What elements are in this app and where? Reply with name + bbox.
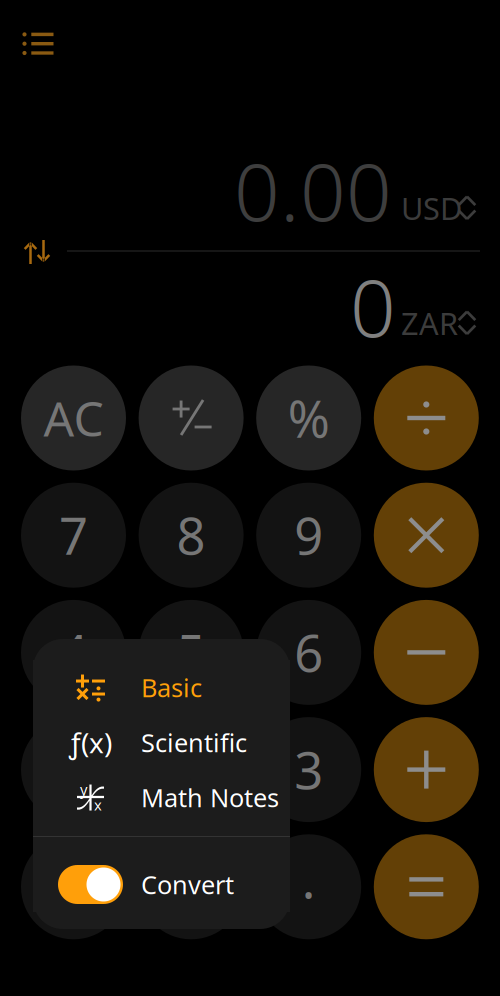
- button[interactable]: 8: [139, 483, 244, 588]
- button[interactable]: 2: [139, 717, 244, 822]
- button[interactable]: Add: [374, 717, 479, 822]
- staticText: USD: [401, 188, 462, 228]
- button[interactable]: y: [33, 770, 290, 825]
- button[interactable]: 5: [139, 600, 244, 705]
- staticText: Math Notes: [141, 781, 279, 814]
- button[interactable]: 0: [21, 834, 126, 939]
- button[interactable]: %: [256, 365, 361, 470]
- button[interactable]: 7: [21, 483, 126, 588]
- staticText: .: [302, 845, 316, 912]
- button[interactable]: .: [256, 834, 361, 939]
- button[interactable]: Subtract: [374, 600, 479, 705]
- button[interactable]: AC: [21, 365, 126, 470]
- button[interactable]: Convert: [33, 857, 290, 912]
- staticText: 0: [350, 253, 396, 359]
- button[interactable]: Toggle sign: [139, 365, 244, 470]
- staticText: Convert: [141, 868, 234, 901]
- button[interactable]: Swap currencies: [15, 230, 59, 274]
- staticText: x: [94, 795, 102, 814]
- button[interactable]: Source currency USD: [401, 190, 479, 226]
- staticText: ZAR: [401, 303, 458, 343]
- staticText: 5: [177, 619, 206, 686]
- staticText: 0.00: [234, 137, 392, 243]
- staticText: y: [80, 779, 87, 799]
- button[interactable]: Calculator modes: [12, 21, 64, 67]
- staticText: 6: [294, 619, 323, 686]
- staticText: 9: [294, 502, 323, 569]
- button[interactable]: 3: [256, 717, 361, 822]
- button[interactable]: 9: [256, 483, 361, 588]
- staticText: 7: [59, 502, 88, 569]
- button[interactable]: Basic: [33, 660, 290, 715]
- button[interactable]: ƒ(x): [33, 715, 290, 770]
- button[interactable]: Target currency ZAR: [401, 305, 479, 341]
- staticText: Basic: [141, 671, 202, 704]
- staticText: 8: [177, 502, 206, 569]
- button[interactable]: Multiply: [374, 483, 479, 588]
- button[interactable]: 6: [256, 600, 361, 705]
- staticText: Scientific: [141, 726, 247, 759]
- staticText: 3: [294, 736, 323, 803]
- button[interactable]: Divide: [374, 365, 479, 470]
- staticText: 2: [177, 736, 206, 803]
- staticText: ƒ(x): [69, 724, 112, 761]
- button[interactable]: 1: [21, 717, 126, 822]
- staticText: AC: [43, 386, 103, 450]
- staticText: %: [288, 384, 330, 452]
- button[interactable]: ,: [139, 834, 244, 939]
- staticText: 0: [59, 853, 88, 920]
- staticText: 4: [59, 619, 88, 686]
- button[interactable]: 4: [21, 600, 126, 705]
- button[interactable]: Equals: [374, 834, 479, 939]
- staticText: ,: [184, 845, 198, 912]
- staticText: 1: [59, 736, 88, 803]
